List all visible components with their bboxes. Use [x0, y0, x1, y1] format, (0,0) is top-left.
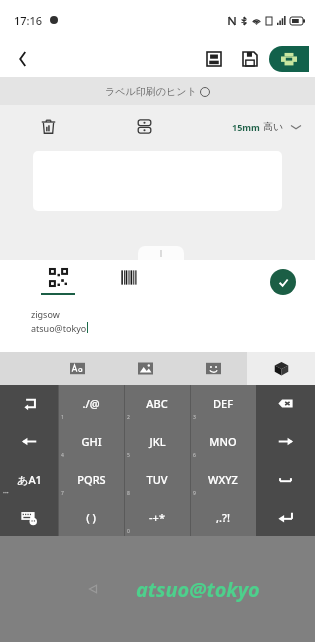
- button[interactable]: JKL: [124, 422, 190, 460]
- button[interactable]: Keyboard settings: [0, 498, 58, 536]
- staticText: -+*: [149, 510, 165, 525]
- button[interactable]: Back: [82, 578, 104, 600]
- button[interactable]: Left: [0, 422, 58, 460]
- button[interactable]: Emoji: [179, 352, 247, 385]
- button[interactable]: Space: [256, 460, 315, 498]
- button[interactable]: PQRS: [58, 460, 124, 498]
- button[interactable]: あA1: [0, 460, 58, 498]
- staticText: 3: [193, 414, 196, 421]
- button[interactable]: -+*: [124, 498, 190, 536]
- button[interactable]: zigsow: [0, 304, 315, 352]
- staticText: 5: [127, 452, 130, 459]
- staticText: •••: [3, 490, 9, 497]
- staticText: 7: [61, 490, 64, 497]
- staticText: atsuo@tokyo: [31, 322, 87, 334]
- staticText: 0: [127, 528, 130, 535]
- staticText: GHI: [81, 434, 102, 449]
- button[interactable]: ./@: [58, 385, 124, 422]
- button[interactable]: Enter: [256, 498, 315, 536]
- staticText: あA1: [17, 472, 42, 487]
- button[interactable]: Save draft: [199, 44, 229, 74]
- staticText: ( ): [86, 510, 96, 525]
- staticText: DEF: [213, 396, 233, 411]
- button[interactable]: Print: [269, 46, 309, 72]
- button[interactable]: WXYZ: [190, 460, 256, 498]
- button[interactable]: [138, 246, 184, 260]
- staticText: 6: [193, 452, 196, 459]
- staticText: ラベル印刷のヒント: [105, 85, 197, 98]
- button[interactable]: ABC: [124, 385, 190, 422]
- staticText: atsuo@tokyo: [136, 576, 260, 603]
- staticText: 4: [61, 452, 64, 459]
- staticText: 1: [61, 414, 64, 421]
- staticText: zigsow: [31, 308, 60, 320]
- button[interactable]: QR code: [34, 269, 82, 295]
- staticText: 17:16: [14, 13, 43, 28]
- button[interactable]: ラベル印刷のヒント: [0, 77, 315, 105]
- button[interactable]: Fit size: [130, 112, 158, 140]
- button[interactable]: 15mm: [232, 120, 301, 133]
- button[interactable]: Back: [8, 44, 38, 74]
- button[interactable]: TUV: [124, 460, 190, 498]
- staticText: MNO: [209, 434, 237, 449]
- button[interactable]: Text style: [43, 352, 111, 385]
- button[interactable]: Barcode: [104, 269, 152, 286]
- staticText: WXYZ: [208, 472, 238, 487]
- button[interactable]: Save: [235, 44, 265, 74]
- button[interactable]: Delete: [34, 112, 62, 140]
- button[interactable]: ( ): [58, 498, 124, 536]
- button[interactable]: DEF: [190, 385, 256, 422]
- button[interactable]: MNO: [190, 422, 256, 460]
- staticText: ,.?!: [216, 510, 230, 525]
- staticText: JKL: [149, 434, 166, 449]
- staticText: 高い: [263, 120, 284, 133]
- button[interactable]: 3D objects: [247, 352, 315, 385]
- button[interactable]: Confirm: [270, 269, 296, 295]
- button[interactable]: Backspace: [256, 385, 315, 422]
- staticText: TUV: [146, 472, 168, 487]
- button[interactable]: Images: [111, 352, 179, 385]
- button[interactable]: Undo: [0, 385, 58, 422]
- staticText: PQRS: [77, 472, 106, 487]
- staticText: 15mm: [232, 121, 263, 133]
- staticText: ./@: [82, 396, 100, 411]
- staticText: ABC: [146, 396, 168, 411]
- staticText: 9: [193, 490, 196, 497]
- button[interactable]: ,.?!: [190, 498, 256, 536]
- staticText: 2: [127, 414, 130, 421]
- button[interactable]: Right: [256, 422, 315, 460]
- button[interactable]: GHI: [58, 422, 124, 460]
- staticText: 8: [127, 490, 130, 497]
